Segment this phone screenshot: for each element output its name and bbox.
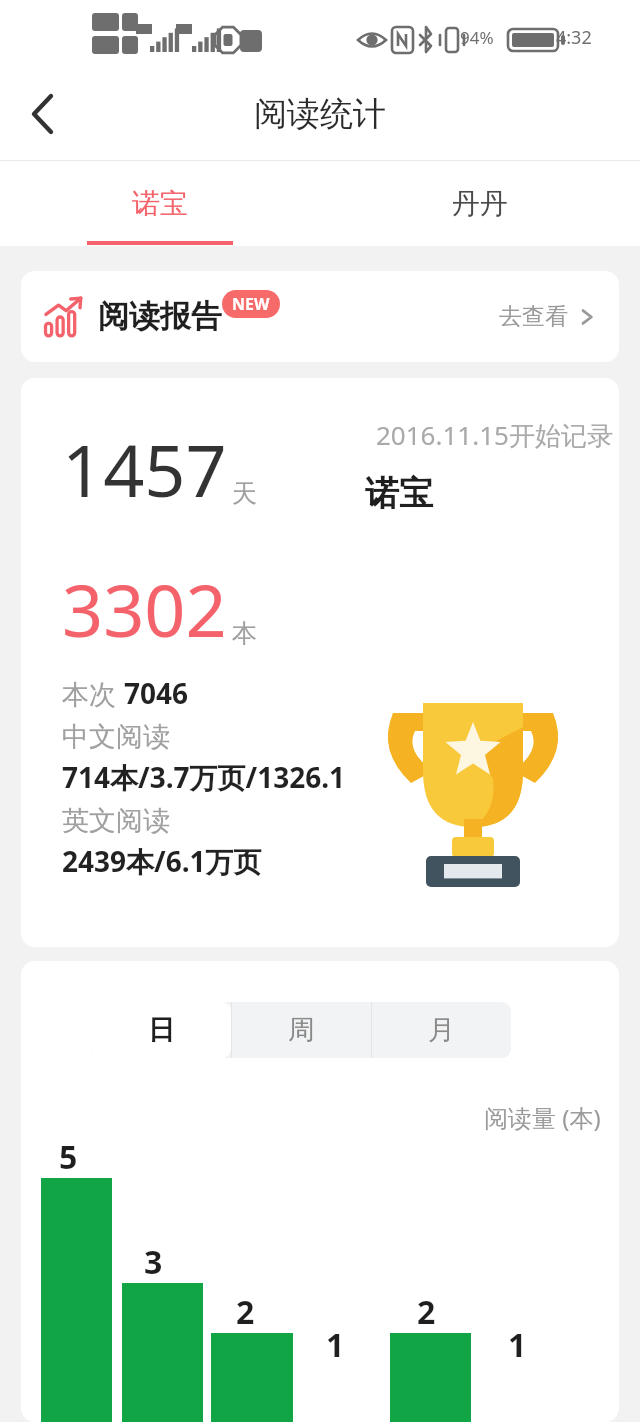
staticText: 月 [428, 1013, 455, 1047]
staticText: 3 [144, 1240, 163, 1284]
staticText: 1 [508, 1323, 527, 1367]
button[interactable]: 丹丹 [320, 161, 640, 246]
staticText: 英文阅读 [62, 804, 170, 838]
staticText: 7046 [124, 674, 189, 712]
staticText: NEW [232, 293, 270, 315]
staticText: 714本/3.7万页/1326.1 [62, 758, 346, 796]
staticText: 丹丹 [452, 186, 508, 221]
staticText: 阅读报告 [98, 297, 222, 336]
staticText: 阅读量 (本) [484, 1101, 601, 1134]
staticText: 诺宝 [132, 186, 188, 221]
button[interactable]: Back [8, 80, 76, 148]
staticText: 日 [148, 1013, 175, 1047]
staticText: 2 [417, 1290, 436, 1334]
staticText: 2439本/6.1万页 [62, 842, 262, 880]
staticText: 天 [232, 478, 257, 509]
button[interactable]: 周 [232, 1002, 371, 1058]
button[interactable]: 月 [372, 1002, 511, 1058]
staticText: 周 [288, 1013, 315, 1047]
button[interactable]: 阅读报告 [21, 271, 619, 362]
button[interactable]: 日 [91, 1002, 231, 1058]
staticText: 去查看 [499, 302, 568, 331]
button[interactable]: 诺宝 [0, 161, 320, 246]
staticText: 5 [59, 1135, 78, 1179]
staticText: 1457 [62, 420, 227, 518]
staticText: 94% [460, 26, 494, 49]
staticText: 1 [326, 1323, 345, 1367]
staticText: 4:32 [556, 25, 592, 50]
staticText: 3302 [62, 560, 227, 658]
staticText: 本次 [62, 675, 124, 712]
staticText: 2 [236, 1290, 255, 1334]
button[interactable]: 2016.11.15开始记录 [21, 378, 619, 947]
staticText: 阅读统计 [254, 93, 386, 135]
staticText: 诺宝 [365, 472, 433, 515]
staticText: 中文阅读 [62, 720, 170, 754]
staticText: 2016.11.15开始记录 [376, 417, 613, 453]
staticText: 本 [232, 618, 257, 649]
